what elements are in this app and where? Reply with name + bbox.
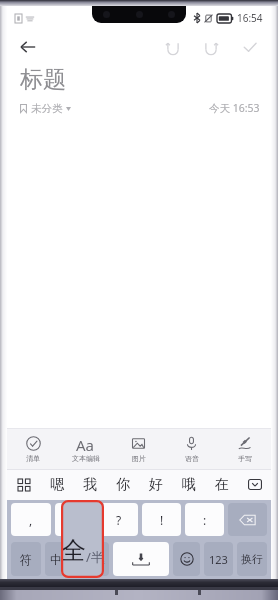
staticText: : <box>203 512 207 528</box>
button[interactable]: 123 <box>204 542 233 576</box>
staticText: , <box>29 512 33 528</box>
staticText: /半 <box>86 548 104 566</box>
button[interactable]: ! <box>142 503 181 536</box>
button[interactable]: 。 <box>55 503 95 536</box>
staticText: /半 <box>96 558 105 567</box>
button[interactable]: Undo <box>154 30 192 63</box>
staticText: 全 <box>84 552 96 567</box>
staticText: 语音 <box>185 454 199 463</box>
button[interactable]: Space <box>113 542 169 576</box>
button[interactable]: Candidate panel <box>7 469 40 500</box>
staticText: 全 <box>61 535 86 566</box>
button[interactable]: 中 <box>45 542 75 576</box>
staticText: ? <box>116 512 122 528</box>
staticText: 换行 <box>241 552 263 566</box>
staticText: 未分类 <box>31 102 63 115</box>
staticText: 符 <box>20 552 32 567</box>
button[interactable]: More candidates <box>238 469 271 500</box>
button[interactable]: Back <box>7 30 49 63</box>
staticText: 文本编辑 <box>72 454 100 463</box>
button[interactable]: 未分类 <box>20 102 71 115</box>
button[interactable]: Aa <box>59 428 112 469</box>
button[interactable]: 好 <box>139 469 172 500</box>
staticText: 在 <box>215 476 229 494</box>
staticText: 好 <box>149 476 163 494</box>
button[interactable]: Emoji <box>173 542 200 576</box>
button[interactable]: Done <box>230 30 270 63</box>
staticText: 今天 16:53 <box>209 101 260 115</box>
button[interactable]: 在 <box>205 469 238 500</box>
staticText: 我 <box>83 476 97 494</box>
staticText: 哦 <box>182 476 196 494</box>
button[interactable]: ? <box>99 503 138 536</box>
button[interactable]: 语音 <box>165 428 218 469</box>
button[interactable]: 符 <box>11 542 41 576</box>
button[interactable]: 清单 <box>7 428 59 469</box>
button[interactable]: , <box>11 503 51 536</box>
button[interactable]: 你 <box>106 469 139 500</box>
staticText: Aa <box>76 435 95 452</box>
staticText: /英 <box>62 558 71 567</box>
staticText: 手写 <box>238 454 252 463</box>
button[interactable]: : <box>185 503 224 536</box>
staticText: 中 <box>50 552 62 567</box>
button[interactable]: 全 <box>79 542 109 576</box>
staticText: 16:54 <box>237 11 263 25</box>
button[interactable]: 嗯 <box>40 469 73 500</box>
button[interactable]: 换行 <box>237 542 267 576</box>
staticText: 清单 <box>26 454 40 463</box>
staticText: 标题 <box>20 65 66 94</box>
staticText: 嗯 <box>50 476 64 494</box>
button[interactable]: 图片 <box>112 428 165 469</box>
staticText: 123 <box>209 552 228 567</box>
button[interactable]: 哦 <box>172 469 205 500</box>
staticText: 你 <box>116 476 130 494</box>
button[interactable]: 我 <box>73 469 106 500</box>
button[interactable]: Backspace <box>228 503 267 536</box>
button[interactable]: 手写 <box>218 428 271 469</box>
button[interactable]: Redo <box>192 30 230 63</box>
staticText: ! <box>160 512 164 528</box>
staticText: 图片 <box>132 454 146 463</box>
